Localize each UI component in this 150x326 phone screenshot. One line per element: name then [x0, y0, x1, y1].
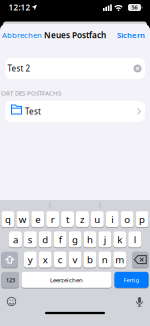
- staticText: w: [19, 213, 27, 226]
- button[interactable]: v: [69, 251, 81, 268]
- button[interactable]: m: [113, 251, 126, 268]
- staticText: Leerzeichen: [50, 276, 83, 284]
- button[interactable]: y: [24, 251, 37, 268]
- button[interactable]: Leerzeichen: [21, 271, 111, 288]
- button[interactable]: Clear text: [133, 64, 141, 72]
- staticText: h: [87, 233, 93, 246]
- button[interactable]: d: [39, 231, 52, 248]
- button[interactable]: Fertig: [114, 271, 148, 288]
- button[interactable]: Sichern: [117, 30, 145, 40]
- button[interactable]: o: [121, 211, 134, 228]
- button[interactable]: x: [39, 251, 52, 268]
- button[interactable]: i: [106, 211, 119, 228]
- staticText: Fertig: [123, 276, 139, 284]
- staticText: Test: [25, 106, 41, 117]
- staticText: ORT DES POSTFACHS: [1, 89, 61, 97]
- staticText: s: [28, 233, 33, 246]
- button[interactable]: s: [24, 231, 37, 248]
- staticText: 123: [6, 276, 15, 284]
- button[interactable]: Mailbox name, Test 2: [5, 58, 145, 79]
- staticText: i: [111, 213, 113, 226]
- staticText: Sichern: [117, 30, 145, 40]
- button[interactable]: Abbrechen: [2, 30, 42, 40]
- staticText: v: [72, 253, 77, 266]
- staticText: z: [80, 213, 85, 226]
- button[interactable]: Dictation: [134, 296, 144, 307]
- button[interactable]: a: [9, 231, 22, 248]
- staticText: x: [43, 253, 48, 266]
- button[interactable]: Shift: [1, 251, 18, 268]
- button[interactable]: c: [54, 251, 67, 268]
- staticText: d: [42, 233, 48, 246]
- staticText: a: [13, 233, 18, 246]
- button[interactable]: p: [136, 211, 148, 228]
- button[interactable]: r: [46, 211, 59, 228]
- staticText: Test 2: [7, 63, 30, 74]
- staticText: Neues Postfach: [44, 29, 106, 41]
- button[interactable]: Test: [5, 101, 145, 122]
- button[interactable]: z: [76, 211, 89, 228]
- staticText: m: [115, 253, 124, 266]
- staticText: l: [134, 233, 136, 246]
- staticText: Abbrechen: [2, 30, 42, 40]
- button[interactable]: e: [31, 211, 44, 228]
- button[interactable]: b: [83, 251, 96, 268]
- button[interactable]: t: [61, 211, 74, 228]
- button[interactable]: f: [54, 231, 67, 248]
- button[interactable]: Delete: [132, 251, 148, 268]
- button[interactable]: 123: [1, 271, 19, 288]
- button[interactable]: n: [98, 251, 111, 268]
- staticText: 56: [131, 4, 137, 11]
- staticText: u: [94, 213, 100, 226]
- staticText: q: [5, 213, 11, 226]
- staticText: g: [72, 233, 78, 246]
- staticText: c: [58, 253, 63, 266]
- button[interactable]: w: [16, 211, 29, 228]
- button[interactable]: h: [83, 231, 96, 248]
- staticText: r: [51, 213, 55, 226]
- staticText: o: [124, 213, 130, 226]
- button[interactable]: l: [128, 231, 141, 248]
- staticText: t: [66, 213, 69, 226]
- staticText: n: [102, 253, 108, 266]
- staticText: 12:12: [8, 2, 30, 13]
- button[interactable]: k: [113, 231, 126, 248]
- staticText: f: [59, 233, 62, 246]
- staticText: k: [117, 233, 122, 246]
- staticText: j: [104, 233, 106, 246]
- button[interactable]: j: [98, 231, 111, 248]
- staticText: e: [35, 213, 40, 226]
- button[interactable]: g: [69, 231, 81, 248]
- staticText: b: [87, 253, 93, 266]
- staticText: y: [28, 253, 33, 266]
- button[interactable]: u: [91, 211, 104, 228]
- button[interactable]: q: [1, 211, 14, 228]
- staticText: p: [139, 213, 145, 226]
- button[interactable]: Emoji: [7, 297, 16, 306]
